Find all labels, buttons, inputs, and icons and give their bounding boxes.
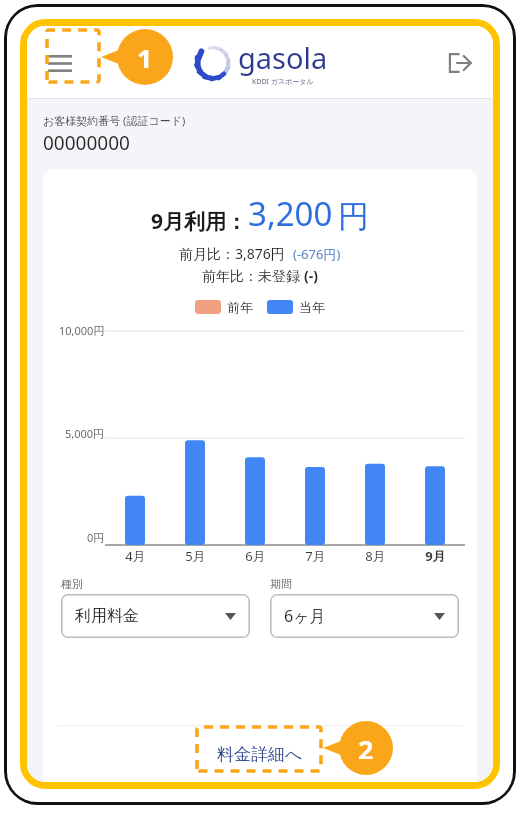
staticText: 円 <box>338 197 369 236</box>
button[interactable]: Menu <box>43 46 77 80</box>
staticText: 4月 <box>125 547 146 565</box>
button[interactable]: 料金詳細へ <box>199 736 321 773</box>
staticText: 前月比：3,876円 <box>179 244 285 263</box>
staticText: 5,000円 <box>65 426 105 441</box>
staticText: 9月 <box>425 547 446 565</box>
staticText: 6ヶ月 <box>284 605 326 627</box>
staticText: KDDI ガスポータル <box>252 77 314 87</box>
staticText: お客様契約番号 (認証コード) <box>43 113 186 128</box>
staticText: 当年 <box>299 299 325 315</box>
staticText: 6月 <box>245 547 266 565</box>
staticText: 7月 <box>305 547 326 565</box>
staticText: 利用料金 <box>75 606 139 626</box>
staticText: gasola <box>238 38 328 77</box>
staticText: 前年比：未登録 <box>202 266 304 285</box>
staticText: 9月利用： <box>151 207 248 236</box>
button[interactable]: 6ヶ月 <box>270 594 459 638</box>
staticText: 期間 <box>270 577 292 591</box>
staticText: 種別 <box>61 577 83 591</box>
staticText: 3,200 <box>248 191 333 236</box>
staticText: 0円 <box>87 530 105 545</box>
staticText: (-676円) <box>293 245 341 263</box>
staticText: 2 <box>358 731 374 759</box>
staticText: 前年 <box>227 299 253 315</box>
button[interactable]: 利用料金 <box>61 594 250 638</box>
staticText: (-) <box>304 266 318 285</box>
staticText: 5月 <box>185 547 206 565</box>
staticText: 1 <box>137 40 153 68</box>
staticText: 10,000円 <box>59 323 105 338</box>
staticText: 00000000 <box>43 130 130 156</box>
staticText: 料金詳細へ <box>217 744 303 765</box>
staticText: 8月 <box>365 547 386 565</box>
button[interactable]: Logout <box>443 46 477 80</box>
